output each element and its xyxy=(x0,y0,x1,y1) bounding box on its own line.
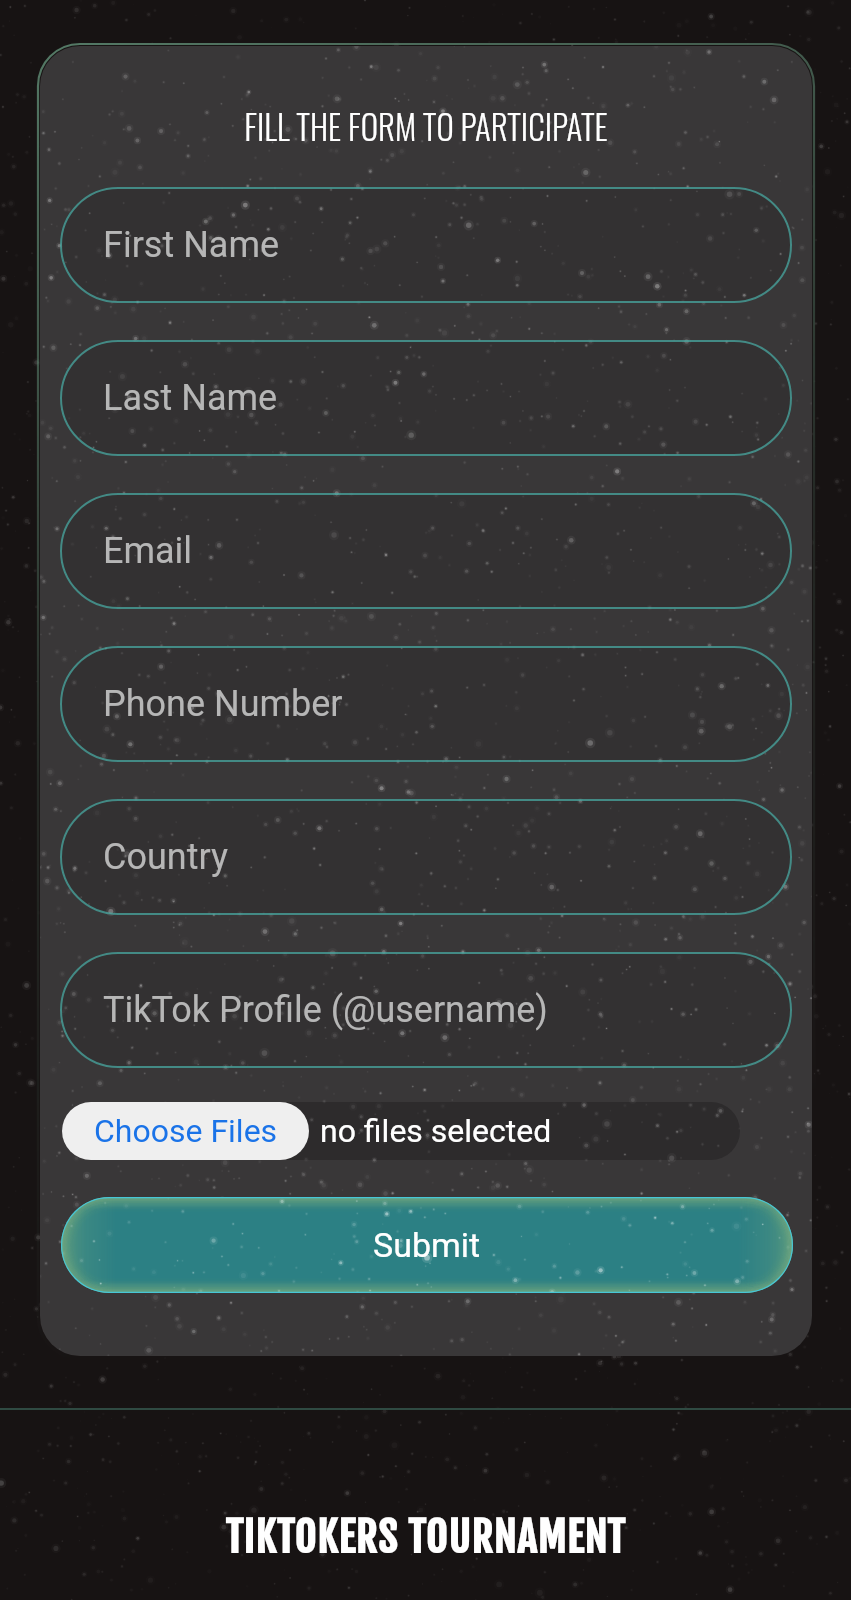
button[interactable]: TikTok Profile (@username) xyxy=(60,952,792,1068)
staticText: Phone Number xyxy=(103,683,343,725)
staticText: Submit xyxy=(373,1225,481,1265)
staticText: TikTok Profile (@username) xyxy=(103,989,548,1031)
staticText: Last Name xyxy=(103,377,278,419)
staticText: FILL THE FORM TO PARTICIPATE xyxy=(40,102,812,151)
button[interactable]: Email xyxy=(60,493,792,609)
button[interactable]: Choose Files xyxy=(62,1102,309,1160)
staticText: Country xyxy=(103,836,229,878)
button[interactable]: Submit xyxy=(61,1197,793,1293)
staticText: no files selected xyxy=(320,1112,552,1150)
button[interactable]: Last Name xyxy=(60,340,792,456)
staticText: Choose Files xyxy=(94,1112,278,1150)
staticText: TIKTOKERS TOURNAMENT xyxy=(0,1512,851,1564)
button[interactable]: Attach files xyxy=(62,1102,740,1160)
button[interactable]: Country xyxy=(60,799,792,915)
button[interactable]: First Name xyxy=(60,187,792,303)
staticText: Email xyxy=(103,530,193,572)
staticText: First Name xyxy=(103,224,280,266)
button[interactable]: Phone Number xyxy=(60,646,792,762)
